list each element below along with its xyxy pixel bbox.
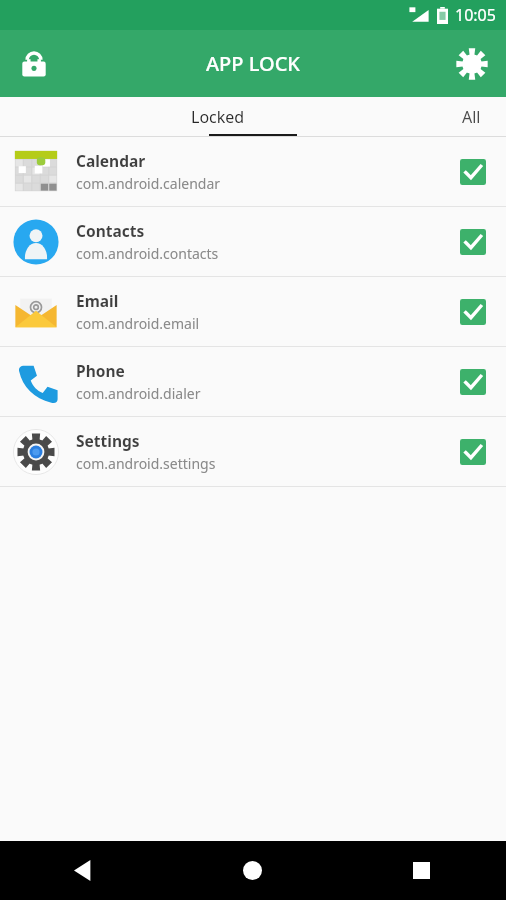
staticText: com.android.dialer bbox=[76, 384, 201, 403]
button[interactable]: App lock bbox=[8, 38, 60, 90]
button[interactable]: All bbox=[436, 97, 506, 137]
button[interactable]: Lock Contacts bbox=[452, 221, 494, 263]
button[interactable]: Lock Calendar bbox=[452, 151, 494, 193]
staticText: Phone bbox=[76, 360, 125, 381]
button[interactable]: Contacts bbox=[0, 207, 506, 277]
button[interactable]: Home bbox=[168, 841, 337, 900]
button[interactable]: Recent apps bbox=[337, 841, 506, 900]
staticText: Email bbox=[76, 290, 119, 311]
button[interactable]: Back bbox=[0, 841, 168, 900]
button[interactable]: Calendar bbox=[0, 137, 506, 207]
staticText: All bbox=[462, 106, 481, 128]
button[interactable]: Phone bbox=[0, 347, 506, 417]
staticText: com.android.settings bbox=[76, 454, 216, 473]
staticText: 10:05 bbox=[455, 4, 496, 26]
button[interactable]: Settings bbox=[446, 38, 498, 90]
staticText: Settings bbox=[76, 430, 140, 451]
button[interactable]: Locked bbox=[0, 97, 435, 137]
staticText: Calendar bbox=[76, 150, 146, 171]
staticText: com.android.calendar bbox=[76, 174, 221, 193]
staticText: com.android.email bbox=[76, 314, 200, 333]
button[interactable]: Lock Phone bbox=[452, 361, 494, 403]
button[interactable]: Lock Email bbox=[452, 291, 494, 333]
staticText: Contacts bbox=[76, 220, 145, 241]
button[interactable]: Settings bbox=[0, 417, 506, 487]
staticText: com.android.contacts bbox=[76, 244, 219, 263]
button[interactable]: Lock Settings bbox=[452, 431, 494, 473]
button[interactable]: Email bbox=[0, 277, 506, 347]
staticText: APP LOCK bbox=[206, 50, 300, 77]
staticText: Locked bbox=[191, 106, 245, 128]
